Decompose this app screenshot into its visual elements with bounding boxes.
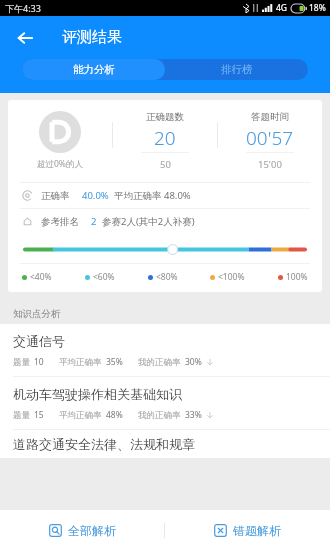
- staticText: 题量: [13, 357, 30, 368]
- staticText: 30%: [185, 356, 202, 368]
- staticText: 知识点分析: [13, 308, 61, 320]
- staticText: 00'57: [246, 125, 294, 151]
- button[interactable]: 机动车驾驶操作相关基础知识: [0, 377, 330, 429]
- staticText: 100%: [286, 271, 308, 283]
- staticText: 48%: [106, 409, 123, 421]
- button[interactable]: 交通信号: [0, 324, 330, 376]
- staticText: 评测结果: [62, 28, 122, 47]
- staticText: 平均正确率: [59, 357, 102, 368]
- staticText: 超过0%的人: [37, 158, 83, 170]
- button[interactable]: Back: [9, 22, 41, 54]
- staticText: 50: [160, 158, 171, 171]
- staticText: 10: [34, 356, 44, 368]
- staticText: <60%: [93, 271, 115, 283]
- staticText: 下午4:33: [5, 2, 41, 14]
- staticText: 题量: [13, 410, 30, 421]
- button[interactable]: 排行榜: [165, 59, 308, 80]
- staticText: 20: [154, 125, 176, 151]
- staticText: <80%: [156, 271, 178, 283]
- staticText: 机动车驾驶操作相关基础知识: [13, 386, 182, 402]
- staticText: 正确率: [41, 190, 70, 202]
- staticText: 错题解析: [233, 523, 281, 538]
- staticText: <100%: [218, 271, 245, 283]
- staticText: 正确题数: [146, 111, 184, 123]
- button[interactable]: 全部解析: [0, 510, 164, 550]
- staticText: 33%: [185, 409, 202, 421]
- staticText: 4G: [276, 2, 288, 14]
- staticText: 能力分析: [73, 63, 115, 76]
- button[interactable]: 能力分析: [22, 59, 165, 80]
- staticText: 参考排名: [41, 216, 79, 228]
- staticText: 排行榜: [221, 63, 253, 76]
- staticText: 平均正确率: [59, 410, 102, 421]
- staticText: 35%: [106, 356, 123, 368]
- button[interactable]: 道路交通安全法律、法规和规章: [0, 430, 330, 458]
- staticText: 15'00: [258, 158, 282, 171]
- staticText: 参赛2人(其中2人补赛): [102, 215, 195, 228]
- staticText: 答题时间: [251, 111, 289, 123]
- staticText: 平均正确率 48.0%: [114, 189, 191, 202]
- staticText: 交通信号: [13, 333, 65, 349]
- staticText: 15: [34, 409, 44, 421]
- staticText: 40.0%: [82, 189, 109, 202]
- staticText: 我的正确率: [138, 410, 181, 421]
- staticText: 18%: [309, 2, 326, 14]
- staticText: 全部解析: [68, 523, 116, 538]
- staticText: <40%: [30, 271, 52, 283]
- staticText: 道路交通安全法律、法规和规章: [13, 436, 195, 452]
- button[interactable]: 错题解析: [165, 510, 330, 550]
- staticText: 我的正确率: [138, 357, 181, 368]
- staticText: 2: [91, 215, 97, 228]
